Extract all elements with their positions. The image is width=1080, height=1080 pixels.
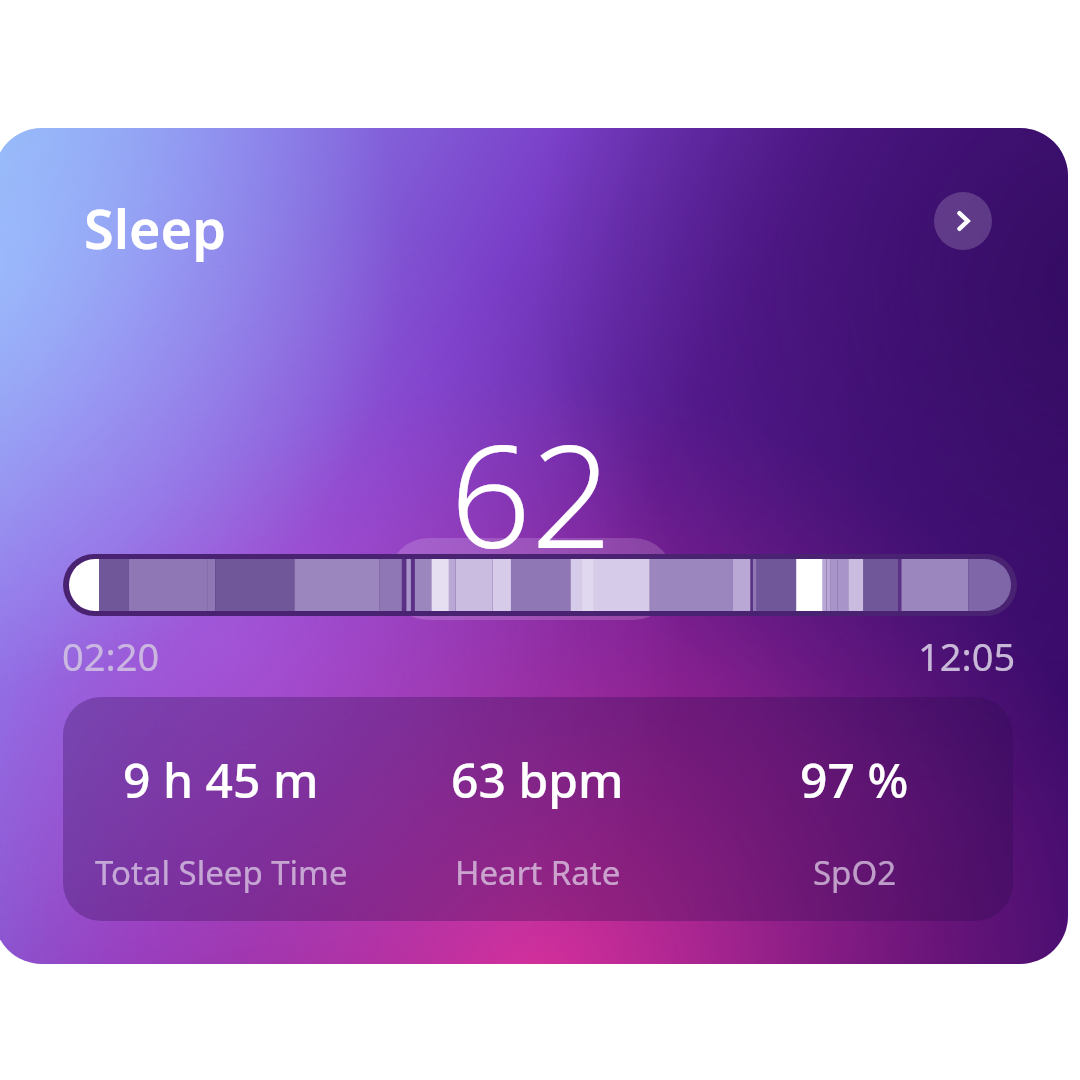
button[interactable]: Sleep	[84, 191, 226, 265]
staticText: Heart Rate	[455, 850, 621, 895]
staticText: Total Sleep Time	[95, 850, 348, 895]
button[interactable]: 63 bpm	[379, 697, 696, 921]
staticText: Sleep	[84, 191, 226, 265]
staticText: 63 bpm	[451, 747, 624, 812]
staticText: SpO2	[813, 850, 897, 895]
staticText: 9 h 45 m	[123, 747, 319, 812]
button[interactable]: 97 %	[696, 697, 1013, 921]
button[interactable]: Normal	[422, 538, 640, 620]
button[interactable]	[63, 554, 1017, 616]
button[interactable]: 9 h 45 m	[63, 697, 379, 921]
staticText: 62	[450, 396, 613, 589]
staticText: Normal	[484, 549, 640, 609]
staticText: 97 %	[800, 747, 909, 812]
button[interactable]: Open sleep details	[934, 192, 992, 250]
staticText: 12:05	[918, 630, 1016, 682]
staticText: 02:20	[62, 630, 160, 682]
